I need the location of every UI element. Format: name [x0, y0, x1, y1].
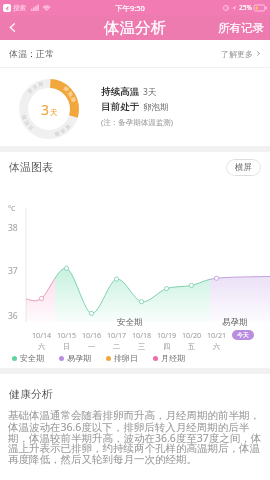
staticText: 体温：正常 — [9, 48, 54, 59]
staticText: 安全期 — [20, 353, 44, 363]
staticText: 易孕期 — [222, 317, 248, 328]
button[interactable]: 今天 — [232, 330, 254, 340]
staticText: 10/21 — [207, 330, 227, 340]
staticText: 基础体温通常会随着排卵而升高，月经周期的前半期，体温波动在36.6度以下，排卵后… — [8, 409, 268, 466]
staticText: 37 — [8, 265, 18, 277]
staticText: 二 — [113, 342, 121, 351]
staticText: 天 — [50, 108, 58, 117]
staticText: 10/15 — [57, 330, 77, 340]
staticText: 了解更多 — [221, 49, 253, 59]
button[interactable]: 体温：正常 — [0, 40, 270, 67]
staticText: 目前处于 — [101, 101, 139, 113]
staticText: 三 — [138, 342, 146, 351]
staticText: 安全期 — [117, 317, 143, 328]
button[interactable]: 横屏 — [226, 159, 261, 176]
staticText: 体温分析 — [104, 18, 166, 38]
staticText: 3 — [41, 100, 50, 119]
button[interactable]: Back — [0, 15, 25, 40]
staticText: °C — [8, 204, 16, 214]
staticText: 10/20 — [182, 330, 202, 340]
staticText: 排卵日 — [114, 353, 138, 363]
staticText: 10/14 — [32, 330, 52, 340]
staticText: 体温图表 — [9, 160, 53, 174]
staticText: 健康分析 — [9, 387, 53, 401]
staticText: 38 — [8, 222, 18, 234]
button[interactable]: 所有记录 — [209, 17, 270, 39]
staticText: 日 — [63, 342, 71, 351]
staticText: 10/19 — [157, 330, 177, 340]
staticText: 3天 — [143, 86, 157, 98]
staticText: 10/16 — [82, 330, 102, 340]
staticText: 搜索 — [13, 4, 26, 12]
staticText: 四 — [163, 342, 171, 351]
staticText: 五 — [188, 342, 196, 351]
staticText: 月经期 — [161, 353, 185, 363]
staticText: 所有记录 — [218, 21, 264, 35]
staticText: 卵泡期 — [143, 102, 169, 113]
staticText: 六 — [213, 342, 221, 351]
staticText: 一 — [88, 342, 96, 351]
staticText: 36 — [8, 310, 18, 322]
staticText: 10/18 — [132, 330, 152, 340]
staticText: 下午9:50 — [115, 3, 145, 13]
staticText: 10/17 — [107, 330, 127, 340]
staticText: 六 — [38, 342, 46, 351]
staticText: 25% — [239, 3, 252, 12]
staticText: (注：备孕期体温监测) — [101, 117, 173, 127]
staticText: 今天 — [237, 331, 249, 339]
staticText: 易孕期 — [67, 353, 91, 363]
staticText: 横屏 — [235, 162, 252, 173]
staticText: 持续高温 — [101, 86, 139, 98]
